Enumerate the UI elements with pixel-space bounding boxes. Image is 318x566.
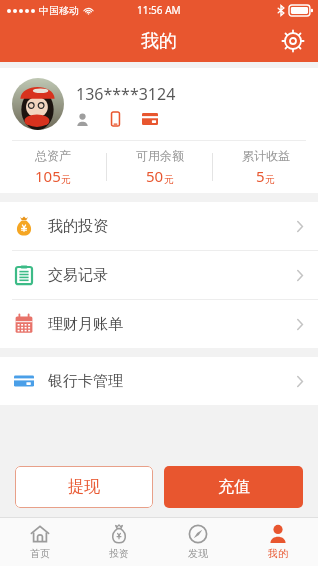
staticText: 交易记录 [48, 266, 108, 285]
staticText: 元 [164, 173, 174, 186]
button[interactable]: 投资 [79, 518, 158, 566]
staticText: 可用余额 [136, 148, 184, 163]
staticText: 银行卡管理 [48, 372, 123, 391]
staticText: 充值 [218, 477, 250, 497]
button[interactable]: 银行卡管理 [0, 357, 318, 405]
button[interactable]: 我的投资 [0, 202, 318, 250]
staticText: 提现 [68, 477, 100, 497]
button[interactable]: 累计收益 [213, 148, 318, 186]
staticText: 元 [61, 173, 71, 186]
button[interactable]: 交易记录 [0, 251, 318, 299]
staticText: 5 [256, 166, 265, 186]
staticText: 发现 [188, 547, 208, 560]
button[interactable]: 可用余额 [107, 148, 212, 186]
staticText: 我的投资 [48, 217, 108, 236]
staticText: 首页 [30, 547, 50, 560]
button[interactable]: 总资产 [0, 148, 106, 186]
button[interactable]: 136****3124 [0, 68, 318, 140]
staticText: 我的 [141, 30, 177, 53]
staticText: 元 [265, 173, 275, 186]
button[interactable]: 我的 [238, 518, 318, 566]
staticText: 累计收益 [242, 148, 290, 163]
staticText: 136****3124 [76, 83, 176, 105]
button[interactable]: 理财月账单 [0, 300, 318, 348]
staticText: 理财月账单 [48, 315, 123, 334]
staticText: 50 [146, 166, 164, 186]
button[interactable]: 发现 [158, 518, 238, 566]
button[interactable]: 充值 [164, 466, 303, 508]
staticText: 11:56 AM [137, 3, 181, 17]
button[interactable]: 提现 [15, 466, 153, 508]
button[interactable]: 首页 [0, 518, 79, 566]
staticText: 我的 [268, 547, 288, 560]
button[interactable]: Settings [276, 24, 310, 58]
staticText: 105 [35, 166, 61, 186]
staticText: 投资 [109, 547, 129, 560]
staticText: 中国移动 [39, 4, 79, 17]
staticText: 总资产 [35, 148, 71, 163]
